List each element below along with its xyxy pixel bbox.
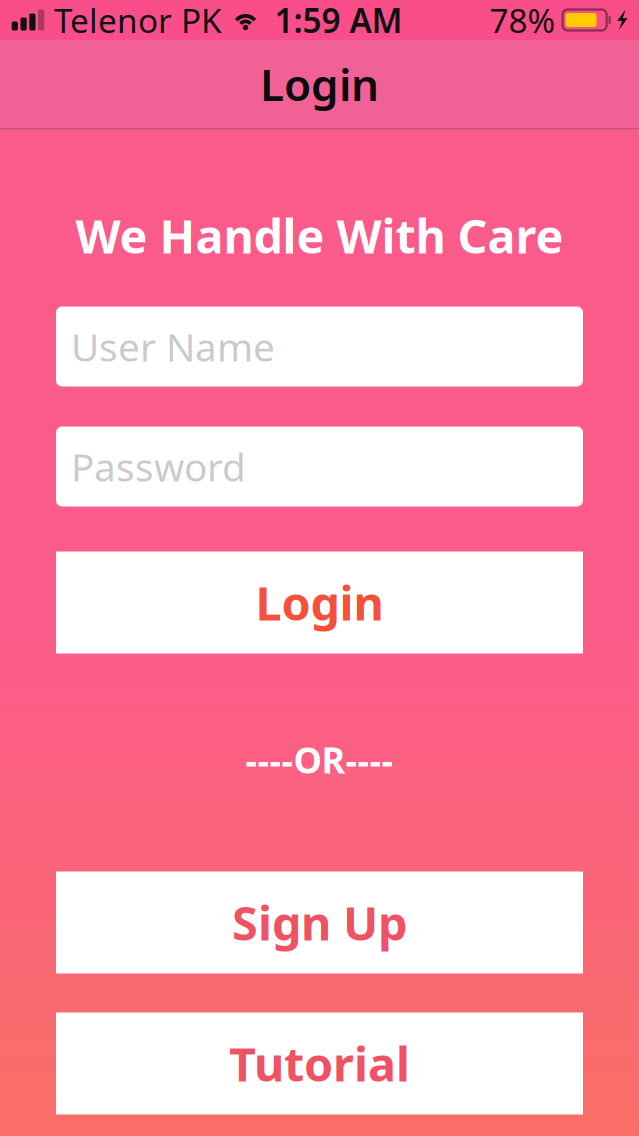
staticText: 1:59 AM [274,0,402,42]
staticText: ----OR---- [245,736,393,783]
staticText: Sign Up [232,891,407,953]
button[interactable]: Password [56,426,583,506]
staticText: Login [260,55,379,113]
button[interactable]: Tutorial [56,1012,583,1114]
button[interactable]: Sign Up [56,871,583,973]
staticText: 78% [490,0,556,42]
staticText: Login [255,571,383,633]
staticText: Password [71,441,246,492]
button[interactable]: User Name [56,306,583,386]
staticText: Telenor PK [54,0,222,42]
staticText: Tutorial [229,1032,410,1094]
staticText: We Handle With Care [75,204,563,266]
staticText: User Name [71,321,275,372]
button[interactable]: Login [56,551,583,653]
